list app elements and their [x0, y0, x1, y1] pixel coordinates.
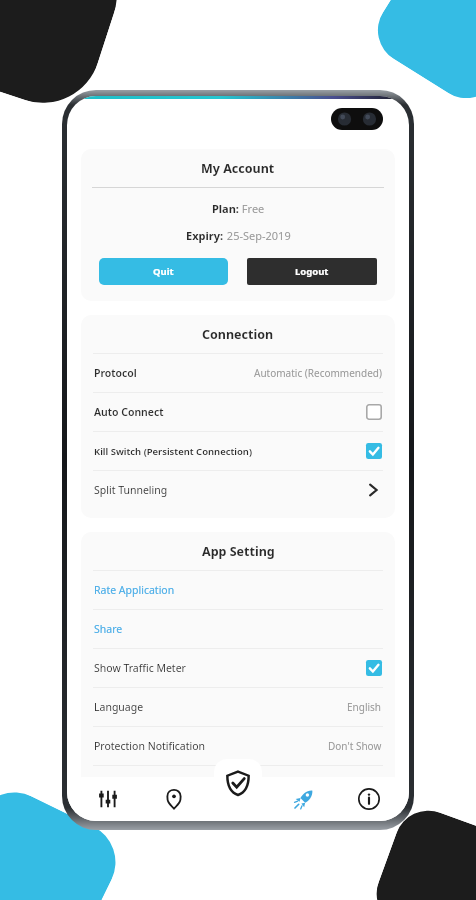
button[interactable]: Split Tunneling — [81, 471, 395, 509]
button[interactable]: Checked — [366, 443, 382, 459]
button[interactable]: Protection — [214, 759, 262, 807]
staticText: Split Tunneling — [94, 483, 168, 497]
button[interactable]: Language — [81, 688, 395, 726]
staticText: My Account — [201, 160, 275, 177]
button[interactable]: Speed Test — [271, 777, 336, 821]
button[interactable]: Kill Switch (Persistent Connection) — [81, 432, 395, 470]
button[interactable]: Rate Application — [81, 571, 395, 609]
staticText: Quit — [153, 265, 174, 278]
staticText: Don't Show — [328, 739, 382, 753]
button[interactable]: Checked — [366, 660, 382, 676]
button[interactable]: Unchecked — [366, 404, 382, 420]
button[interactable]: Show Traffic Meter — [81, 649, 395, 687]
button[interactable]: Protection Notification — [81, 727, 395, 765]
button[interactable]: Settings — [75, 777, 141, 821]
staticText: English — [347, 700, 382, 714]
button[interactable]: Share — [81, 610, 395, 648]
button[interactable]: Servers — [141, 777, 206, 821]
staticText: Expiry: — [186, 228, 224, 243]
staticText: Logout — [295, 265, 329, 278]
staticText: Automatic (Recommended) — [254, 366, 382, 380]
staticText: Kill Switch (Persistent Connection) — [94, 445, 253, 458]
staticText: Theme — [94, 778, 128, 792]
button[interactable]: Theme — [81, 766, 395, 804]
button[interactable]: Protocol — [81, 354, 395, 392]
staticText: Free — [239, 201, 265, 216]
staticText: Auto Connect — [94, 405, 164, 419]
staticText: Language — [94, 700, 144, 714]
staticText: Rate Application — [94, 583, 175, 597]
staticText: Protocol — [94, 366, 137, 380]
staticText: Protection Notification — [94, 739, 206, 753]
button[interactable]: Info — [336, 777, 401, 821]
staticText: Light — [358, 778, 382, 792]
staticText: App Setting — [202, 543, 275, 560]
button[interactable]: Auto Connect — [81, 393, 395, 431]
button[interactable]: Quit — [99, 258, 228, 285]
staticText: Connection — [202, 326, 274, 343]
staticText: Share — [94, 622, 123, 636]
staticText: 25-Sep-2019 — [224, 228, 291, 243]
button[interactable]: Open Split Tunneling — [364, 481, 382, 499]
button[interactable]: Logout — [247, 258, 377, 285]
staticText: Show Traffic Meter — [94, 661, 186, 675]
staticText: Plan: — [212, 201, 239, 216]
